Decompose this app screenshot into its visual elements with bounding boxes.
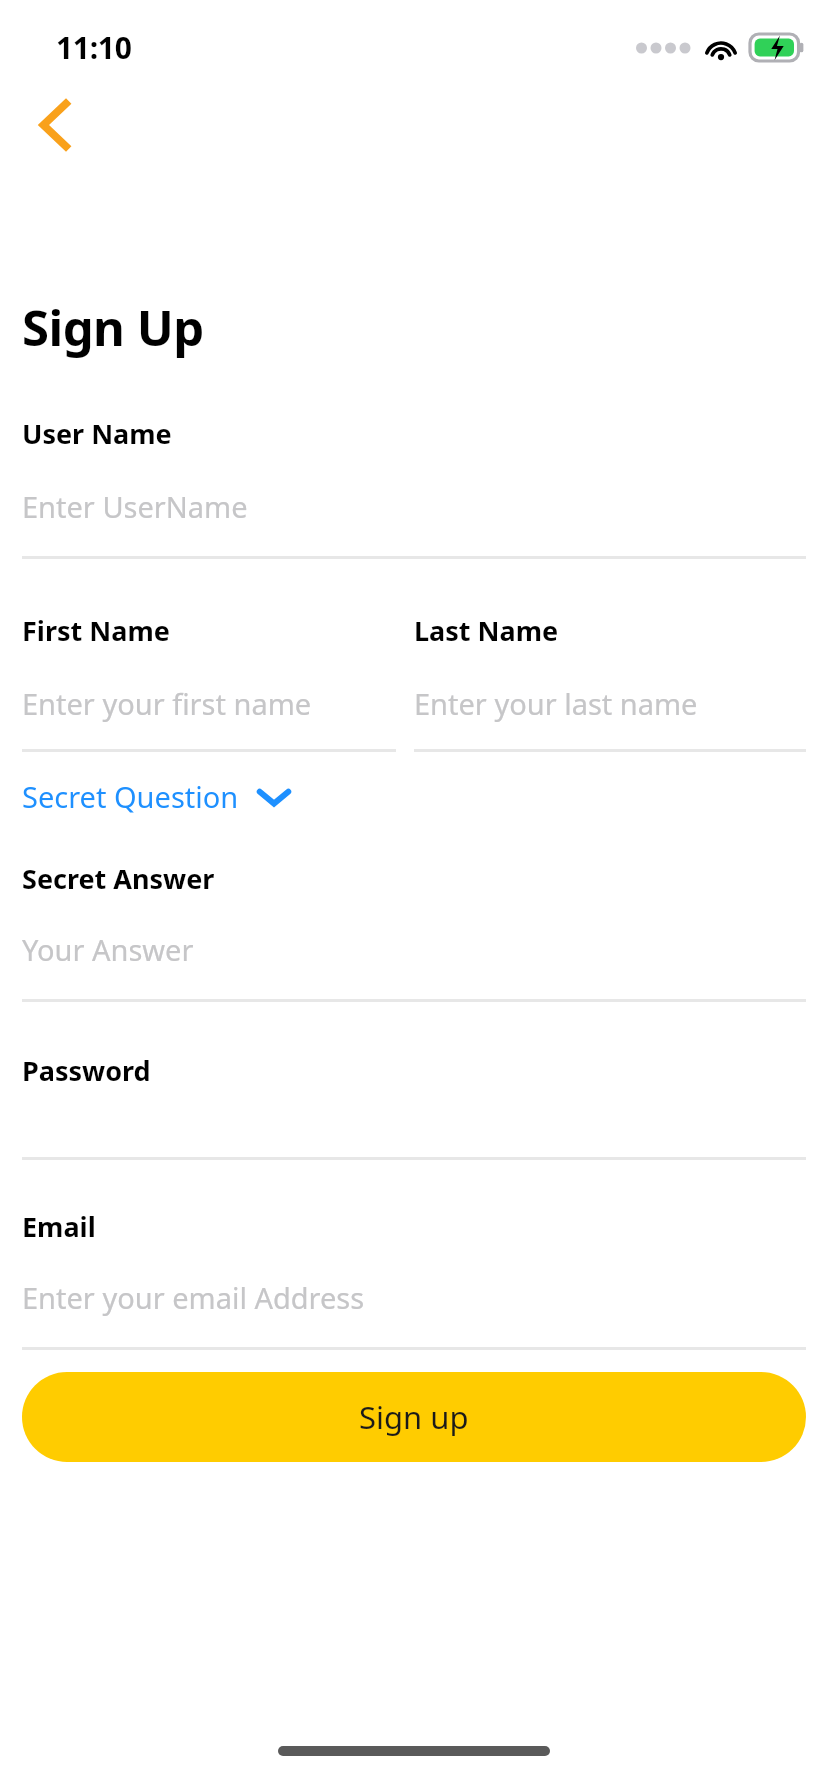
staticText: Enter UserName bbox=[22, 487, 248, 526]
staticText: Secret Answer bbox=[22, 860, 215, 897]
staticText: Sign up bbox=[359, 1396, 469, 1438]
staticText: Sign Up bbox=[22, 294, 204, 361]
staticText: Password bbox=[22, 1052, 151, 1089]
button[interactable]: Sign up bbox=[22, 1372, 806, 1462]
staticText: Enter your last name bbox=[414, 684, 698, 723]
button[interactable]: First Name bbox=[22, 612, 396, 752]
button[interactable]: Secret Question bbox=[22, 777, 291, 816]
staticText: Enter your first name bbox=[22, 684, 312, 723]
button[interactable]: Password bbox=[22, 1052, 806, 1160]
button[interactable]: Back bbox=[18, 88, 92, 162]
button[interactable]: User Name bbox=[22, 415, 806, 559]
button[interactable]: Last Name bbox=[414, 612, 806, 752]
staticText: Enter your email Address bbox=[22, 1278, 365, 1317]
staticText: Email bbox=[22, 1208, 96, 1245]
staticText: 11:10 bbox=[56, 27, 132, 68]
staticText: User Name bbox=[22, 415, 172, 452]
staticText: First Name bbox=[22, 612, 170, 649]
staticText: Your Answer bbox=[22, 930, 194, 969]
staticText: Last Name bbox=[414, 612, 559, 649]
button[interactable]: Email bbox=[22, 1208, 806, 1350]
staticText: Secret Question bbox=[22, 777, 239, 816]
button[interactable]: Secret Answer bbox=[22, 860, 806, 1002]
